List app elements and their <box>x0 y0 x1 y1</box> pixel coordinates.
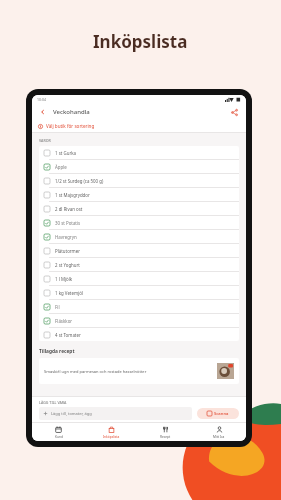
button[interactable]: Scanna <box>197 408 239 419</box>
staticText: VAROR <box>39 138 51 143</box>
button[interactable]: 2 dl Rivan ost <box>39 202 239 215</box>
staticText: Äpple <box>55 164 67 170</box>
staticText: 1/2 st Surdeg (ca 500 g) <box>55 178 104 184</box>
staticText: Tillagda recept <box>39 348 75 355</box>
button[interactable]: Äpple <box>39 160 239 173</box>
button[interactable]: Fläskkor <box>39 314 239 327</box>
button[interactable]: 1 kg Vetemjöl <box>39 286 239 299</box>
staticText: Veckohandla <box>53 108 90 116</box>
button[interactable]: Mitt Ica <box>192 423 246 441</box>
button[interactable]: Havregryn <box>39 230 239 243</box>
staticText: 1 kg Vetemjöl <box>55 290 83 296</box>
staticText: 4 st Tomater <box>55 332 81 338</box>
staticText: Scanna <box>214 411 229 417</box>
button[interactable]: Inköpslista <box>85 423 138 441</box>
button[interactable]: Lägg till, tomater, ägg <box>39 407 192 420</box>
button[interactable]: 30 st Potatis <box>39 216 239 229</box>
button[interactable]: 1/2 st Surdeg (ca 500 g) <box>39 174 239 187</box>
button[interactable]: Share <box>229 107 240 118</box>
staticText: Inköpslista <box>93 30 188 53</box>
button[interactable]: 4 st Tomater <box>39 328 239 341</box>
button[interactable]: Smaskiél ugn med parmesan och rostade ha… <box>39 358 239 384</box>
staticText: 1 st Majsgryddor <box>55 192 90 198</box>
staticText: 10:04 <box>37 97 46 102</box>
button[interactable]: 1 st Majsgryddor <box>39 188 239 201</box>
staticText: Mitt Ica <box>213 435 225 439</box>
staticText: Välj butik för sortering <box>46 123 95 129</box>
staticText: Recept <box>160 435 171 439</box>
staticText: 2 st Yoghurt <box>55 262 80 268</box>
button[interactable]: Kund <box>32 423 85 441</box>
staticText: Kund <box>55 435 63 439</box>
staticText: 1 st Gurka <box>55 150 77 156</box>
button[interactable]: Plätutormer <box>39 244 239 257</box>
staticText: 2 dl Rivan ost <box>55 206 83 212</box>
button[interactable]: 1 l Mjölk <box>39 272 239 285</box>
staticText: Inköpslista <box>103 435 120 439</box>
button[interactable]: Fil <box>39 300 239 313</box>
button[interactable]: 1 st Gurka <box>39 146 239 159</box>
staticText: Fil <box>55 304 60 310</box>
staticText: LÄGG TILL VARA <box>39 400 67 405</box>
button[interactable]: Välj butik för sortering <box>32 120 246 132</box>
staticText: Plätutormer <box>55 248 81 254</box>
staticText: 1 l Mjölk <box>55 276 73 282</box>
staticText: Fläskkor <box>55 318 73 324</box>
staticText: Smaskiél ugn med parmesan och rostade ha… <box>44 369 147 374</box>
button[interactable]: Recept <box>138 423 192 441</box>
button[interactable]: Back <box>38 107 48 117</box>
staticText: Havregryn <box>55 234 77 240</box>
button[interactable]: 2 st Yoghurt <box>39 258 239 271</box>
staticText: Lägg till, tomater, ägg <box>51 411 92 416</box>
staticText: 30 st Potatis <box>55 220 81 226</box>
